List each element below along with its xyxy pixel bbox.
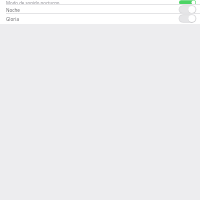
button[interactable]: Gloria off (179, 14, 196, 23)
button[interactable]: Gloria (0, 14, 200, 23)
staticText: Noche (6, 7, 20, 13)
button[interactable]: Modo de sonido nocturno (0, 0, 200, 5)
button[interactable]: Noche off (179, 5, 196, 14)
button[interactable]: Noche (0, 5, 200, 14)
staticText: Gloria (6, 16, 19, 22)
staticText: Modo de sonido nocturno (6, 0, 60, 5)
button[interactable]: Modo de sonido nocturno on (179, 0, 196, 5)
